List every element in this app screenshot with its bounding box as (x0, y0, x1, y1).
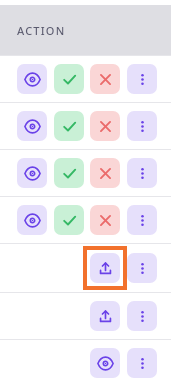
button[interactable]: Reject (90, 111, 120, 141)
button[interactable]: Approve (54, 205, 84, 235)
button[interactable]: Reject (90, 64, 120, 94)
button[interactable]: Reject (90, 158, 120, 188)
button[interactable]: Approve (54, 111, 84, 141)
button[interactable]: Approve (54, 158, 84, 188)
button[interactable]: More options (127, 253, 157, 283)
button[interactable]: More options (127, 301, 157, 331)
button[interactable]: View (17, 64, 47, 94)
button[interactable]: View (17, 205, 47, 235)
button[interactable]: Upload (90, 301, 120, 331)
button[interactable]: View (17, 158, 47, 188)
button[interactable]: Reject (90, 205, 120, 235)
button[interactable]: View (90, 348, 120, 378)
button[interactable]: More options (127, 348, 157, 378)
button[interactable]: More options (127, 64, 157, 94)
staticText: ACTION (17, 23, 66, 38)
button[interactable]: View (17, 111, 47, 141)
button[interactable]: Upload (90, 253, 120, 283)
button[interactable]: More options (127, 158, 157, 188)
button[interactable]: Approve (54, 64, 84, 94)
button[interactable]: More options (127, 205, 157, 235)
button[interactable]: More options (127, 111, 157, 141)
